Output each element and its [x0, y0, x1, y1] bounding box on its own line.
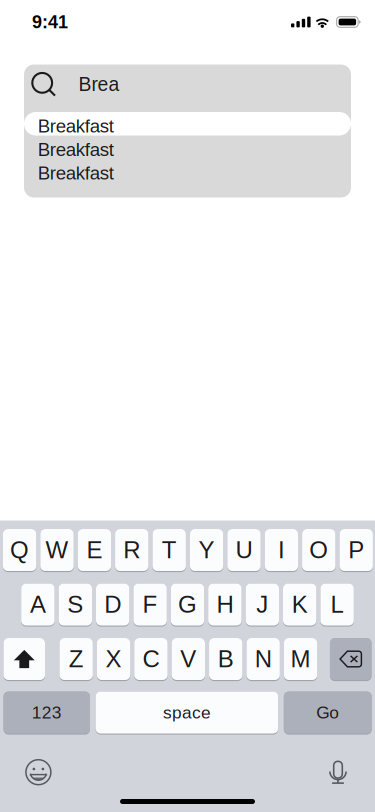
- staticText: T: [162, 537, 177, 563]
- button[interactable]: K: [283, 583, 316, 625]
- staticText: I: [278, 537, 285, 563]
- staticText: L: [331, 591, 344, 618]
- button[interactable]: Z: [59, 638, 93, 680]
- button[interactable]: Breakfast: [24, 159, 351, 182]
- button[interactable]: P: [339, 529, 373, 571]
- staticText: H: [216, 591, 233, 618]
- button[interactable]: E: [78, 529, 111, 571]
- staticText: V: [180, 646, 196, 672]
- staticText: U: [235, 537, 252, 563]
- staticText: Z: [69, 646, 84, 672]
- staticText: D: [104, 591, 121, 618]
- staticText: M: [290, 646, 310, 672]
- button[interactable]: X: [97, 638, 130, 680]
- staticText: K: [292, 591, 308, 618]
- button[interactable]: A: [21, 583, 55, 625]
- button[interactable]: 123: [3, 691, 90, 733]
- staticText: F: [143, 591, 158, 618]
- button[interactable]: C: [134, 638, 168, 680]
- button[interactable]: Q: [3, 529, 36, 571]
- button[interactable]: V: [172, 638, 205, 680]
- button[interactable]: U: [227, 529, 261, 571]
- staticText: P: [348, 537, 364, 563]
- staticText: space: [163, 703, 211, 722]
- staticText: X: [105, 646, 121, 672]
- staticText: Breakfast: [38, 115, 114, 136]
- staticText: S: [67, 591, 83, 618]
- button[interactable]: Delete: [330, 638, 371, 680]
- staticText: N: [255, 646, 272, 672]
- button[interactable]: M: [284, 638, 317, 680]
- staticText: C: [142, 646, 159, 672]
- button[interactable]: L: [320, 583, 354, 625]
- staticText: R: [123, 537, 140, 563]
- button[interactable]: W: [40, 529, 74, 571]
- staticText: W: [45, 537, 68, 563]
- button[interactable]: Y: [190, 529, 223, 571]
- button[interactable]: B: [209, 638, 242, 680]
- staticText: Brea: [78, 73, 119, 95]
- staticText: B: [218, 646, 234, 672]
- staticText: Q: [10, 537, 29, 563]
- button[interactable]: O: [302, 529, 335, 571]
- staticText: Breakfast: [38, 162, 114, 183]
- button[interactable]: T: [152, 529, 186, 571]
- button[interactable]: F: [133, 583, 167, 625]
- button[interactable]: N: [246, 638, 280, 680]
- staticText: A: [30, 591, 46, 618]
- staticText: 123: [32, 703, 62, 722]
- button[interactable]: R: [115, 529, 148, 571]
- staticText: O: [309, 537, 328, 563]
- staticText: G: [178, 591, 197, 618]
- button[interactable]: H: [208, 583, 242, 625]
- button[interactable]: Shift: [3, 638, 45, 680]
- button[interactable]: Dictation: [318, 751, 375, 793]
- button[interactable]: space: [96, 691, 278, 733]
- button[interactable]: Breakfast: [24, 135, 351, 159]
- staticText: J: [256, 591, 268, 618]
- staticText: Y: [199, 537, 215, 563]
- staticText: Breakfast: [38, 139, 114, 160]
- staticText: E: [86, 537, 102, 563]
- staticText: 9:41: [32, 12, 68, 32]
- button[interactable]: Go: [284, 691, 372, 733]
- button[interactable]: I: [265, 529, 298, 571]
- button[interactable]: G: [171, 583, 204, 625]
- button[interactable]: J: [246, 583, 279, 625]
- button[interactable]: D: [96, 583, 129, 625]
- button[interactable]: Emoji: [0, 751, 63, 794]
- button[interactable]: S: [59, 583, 92, 625]
- button[interactable]: Breakfast: [24, 112, 351, 135]
- staticText: Go: [316, 703, 339, 722]
